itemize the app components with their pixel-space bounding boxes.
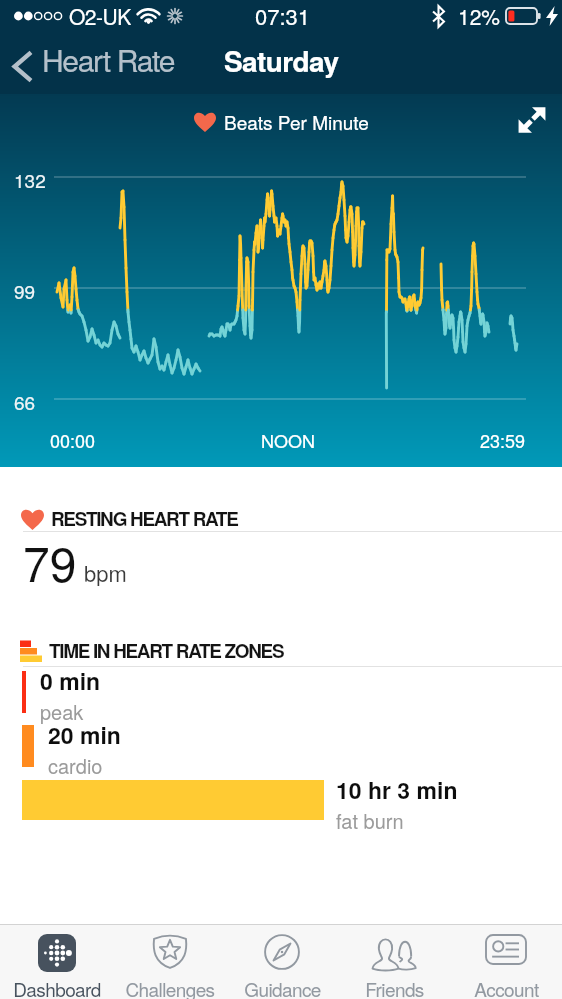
button[interactable]: 10 hr 3 min [0, 780, 562, 842]
staticText: TIME IN HEART RATE ZONES [49, 637, 284, 664]
staticText: 23:59 [480, 427, 526, 453]
staticText: Guidance [244, 975, 321, 999]
staticText: 66 [14, 388, 36, 415]
staticText: Challenges [125, 975, 215, 999]
staticText: 132 [14, 166, 46, 193]
staticText: Friends [365, 975, 424, 999]
staticText: Account [474, 975, 539, 999]
staticText: 79 [23, 527, 77, 596]
staticText: 0 min [40, 664, 101, 697]
staticText: RESTING HEART RATE [51, 505, 238, 532]
button[interactable]: Guidance [226, 925, 338, 999]
staticText: fat burn [336, 806, 404, 835]
staticText: cardio [48, 751, 103, 780]
staticText: 12% [458, 1, 501, 31]
staticText: 10 hr 3 min [336, 773, 458, 806]
staticText: 99 [14, 277, 36, 304]
staticText: Saturday [224, 40, 339, 80]
button[interactable]: Dashboard [0, 925, 113, 999]
staticText: bpm [84, 557, 127, 589]
button[interactable]: Heart Rate [0, 39, 187, 94]
staticText: 07:31 [255, 0, 311, 32]
button[interactable]: Challenges [113, 925, 226, 999]
staticText: Dashboard [13, 975, 101, 999]
button[interactable]: Friends [338, 925, 450, 999]
staticText: Beats Per Minute [224, 108, 369, 135]
staticText: O2-UK [69, 1, 131, 31]
button[interactable]: Expand chart [516, 104, 548, 136]
staticText: peak [40, 697, 84, 726]
button[interactable]: Account [450, 925, 562, 999]
staticText: Heart Rate [42, 38, 175, 81]
staticText: NOON [261, 427, 315, 453]
staticText: 00:00 [50, 427, 96, 453]
button[interactable]: 20 min [0, 725, 562, 787]
staticText: 20 min [48, 718, 121, 751]
button[interactable]: 0 min [0, 671, 562, 733]
